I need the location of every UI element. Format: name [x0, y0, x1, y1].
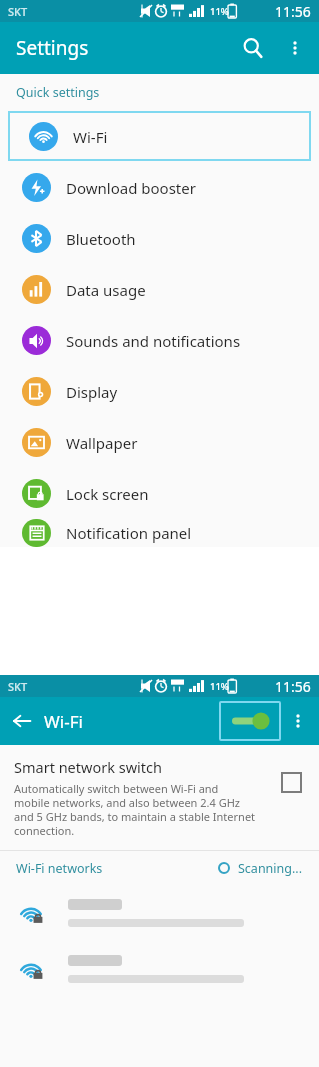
staticText: Data usage: [66, 280, 146, 300]
staticText: SKT: [8, 679, 28, 694]
staticText: Settings: [16, 35, 231, 61]
staticText: 11:56: [275, 677, 311, 696]
staticText: Bluetooth: [66, 229, 136, 249]
staticText: 11%: [210, 680, 229, 693]
staticText: Wallpaper: [66, 433, 138, 453]
button[interactable]: Sounds and notifications: [0, 315, 319, 366]
staticText: Lock screen: [66, 484, 149, 504]
staticText: Display: [66, 382, 118, 402]
staticText: 11:56: [275, 2, 311, 21]
staticText: Download booster: [66, 178, 196, 198]
staticText: SKT: [8, 4, 28, 19]
button[interactable]: Data usage: [0, 264, 319, 315]
button[interactable]: Wallpaper: [0, 417, 319, 468]
button[interactable]: Display: [0, 366, 319, 417]
staticText: Wi-Fi: [73, 127, 108, 147]
button[interactable]: Search: [231, 26, 275, 70]
button[interactable]: Lock screen: [0, 468, 319, 519]
button[interactable]: Navigate up: [0, 699, 44, 743]
button[interactable]: Download booster: [0, 162, 319, 213]
staticText: Quick settings: [16, 84, 100, 101]
staticText: Wi-Fi: [44, 710, 219, 733]
staticText: Sounds and notifications: [66, 331, 241, 351]
button[interactable]: Smart network switch: [0, 745, 319, 850]
button[interactable]: Notification panel: [0, 519, 319, 547]
button[interactable]: More options: [275, 28, 315, 68]
staticText: 11%: [210, 5, 229, 18]
button[interactable]: [0, 885, 319, 941]
button[interactable]: More options: [281, 704, 315, 738]
staticText: Smart network switch: [14, 757, 162, 777]
staticText: Scanning...: [238, 860, 303, 877]
staticText: Wi-Fi networks: [16, 860, 103, 877]
button[interactable]: Wi-Fi on: [219, 701, 281, 741]
staticText: Notification panel: [66, 523, 192, 543]
button[interactable]: Wi-Fi: [8, 111, 311, 161]
button[interactable]: Bluetooth: [0, 213, 319, 264]
button[interactable]: [0, 941, 319, 997]
staticText: Automatically switch between Wi-Fi and m…: [14, 781, 256, 838]
